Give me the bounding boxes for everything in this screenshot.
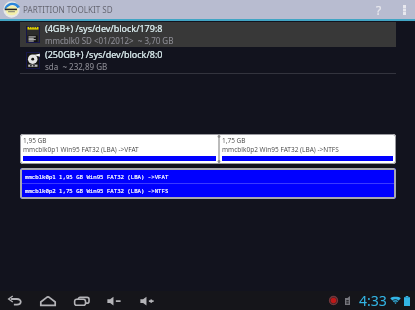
staticText: sda ~ 232,89 GB bbox=[45, 61, 108, 72]
button[interactable]: mmcblk0p2 1,75 GB Win95 FAT32 (LBA) ->NT… bbox=[22, 184, 394, 197]
button[interactable]: 1,75 GB bbox=[220, 135, 395, 163]
button[interactable]: 1,95 GB bbox=[21, 135, 218, 163]
staticText: (250GB+) /sys/dev/block/8:0 bbox=[45, 48, 163, 60]
button[interactable]: Volume up bbox=[136, 291, 158, 310]
staticText: (4GB+) /sys/dev/block/179:8 bbox=[45, 22, 163, 34]
button[interactable]: (4GB+) /sys/dev/block/179:8 bbox=[20, 22, 396, 47]
staticText: mmcblk0p1 1,95 GB Win95 FAT32 (LBA) ->VF… bbox=[25, 173, 169, 181]
staticText: 1,75 GB bbox=[222, 136, 246, 145]
staticText: mmcblk0p2 Win95 FAT32 (LBA) ->NTFS bbox=[222, 145, 339, 154]
staticText: mmcblk0p2 1,75 GB Win95 FAT32 (LBA) ->NT… bbox=[25, 187, 169, 195]
button[interactable]: (250GB+) /sys/dev/block/8:0 bbox=[20, 48, 396, 73]
button[interactable]: Help bbox=[369, 0, 388, 19]
button[interactable]: Recording bbox=[327, 294, 340, 307]
staticText: ? bbox=[376, 2, 382, 18]
staticText: mmcblk0 SD <01/2012> ~ 3,70 GB bbox=[45, 35, 174, 46]
button[interactable]: More options bbox=[395, 0, 413, 19]
button[interactable]: Home bbox=[37, 291, 59, 310]
staticText: 4:33 bbox=[359, 291, 387, 310]
staticText: PARTITION TOOLKIT SD bbox=[23, 4, 113, 15]
button[interactable]: mmcblk0p1 1,95 GB Win95 FAT32 (LBA) ->VF… bbox=[22, 170, 394, 183]
staticText: mmcblk0p1 Win95 FAT32 (LBA) ->VFAT bbox=[23, 145, 139, 154]
staticText: 1,95 GB bbox=[23, 136, 47, 145]
button[interactable]: Recent apps bbox=[71, 291, 93, 310]
button[interactable]: Back bbox=[4, 291, 26, 310]
button[interactable]: Volume down bbox=[103, 291, 125, 310]
